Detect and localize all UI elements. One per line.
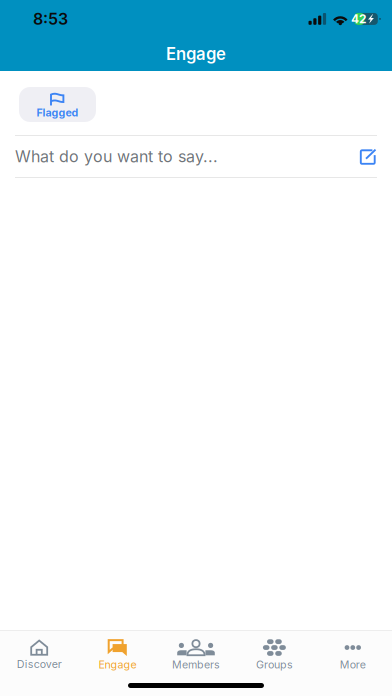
button[interactable]: What do you want to say... — [15, 136, 377, 177]
button[interactable]: Engage — [78, 635, 157, 676]
staticText: Engage — [99, 658, 137, 671]
staticText: 42 — [351, 12, 367, 26]
button[interactable]: More — [314, 635, 392, 676]
staticText: Flagged — [36, 106, 78, 119]
staticText: Groups — [256, 658, 293, 671]
button[interactable]: Members — [157, 635, 235, 676]
staticText: 8:53 — [33, 9, 68, 29]
staticText: What do you want to say... — [15, 147, 218, 166]
staticText: More — [340, 658, 366, 671]
button[interactable]: Groups — [235, 635, 314, 676]
staticText: Members — [172, 658, 220, 671]
staticText: Discover — [17, 657, 62, 670]
button[interactable]: Flagged — [19, 87, 96, 122]
staticText: Engage — [166, 44, 226, 64]
button[interactable]: Discover — [0, 635, 78, 676]
